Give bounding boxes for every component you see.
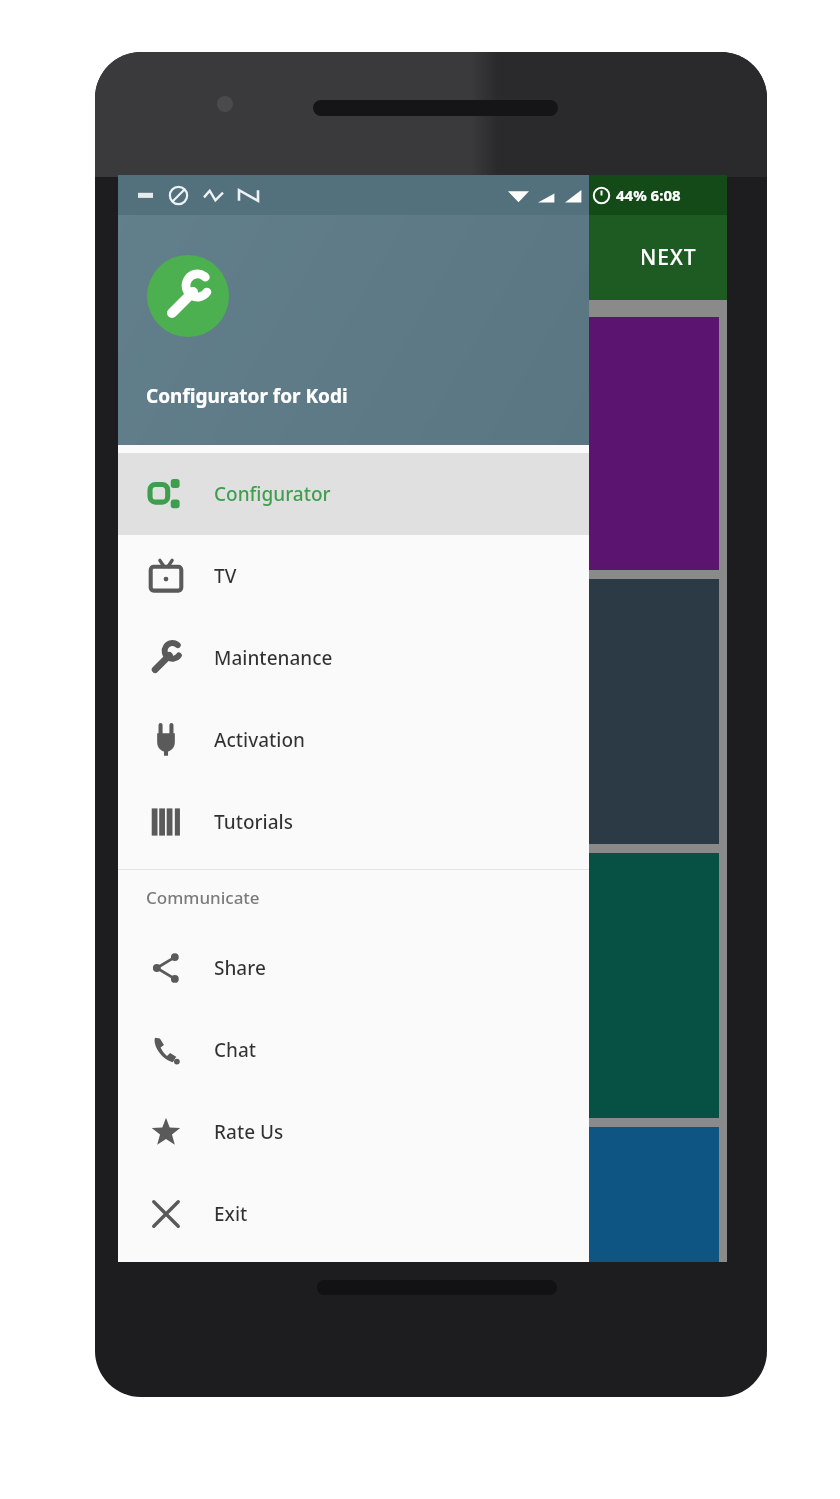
staticText: NEXT (640, 243, 697, 272)
staticText: Activation (214, 727, 305, 753)
staticText: 44% 6:08 (616, 185, 681, 205)
button[interactable]: Exit (118, 1173, 589, 1255)
staticText: TV (214, 563, 237, 589)
button[interactable]: Configurator for Kodi (118, 175, 589, 445)
button[interactable]: Build (126, 317, 719, 570)
button[interactable] (126, 1127, 719, 1262)
staticText: Install (140, 446, 209, 479)
button[interactable]: Root (126, 853, 719, 1118)
button[interactable]: TV (118, 535, 589, 617)
staticText: Clean (140, 714, 204, 747)
button[interactable]: Share (118, 927, 589, 1009)
button[interactable]: Maintenance (118, 617, 589, 699)
staticText: Exit (214, 1201, 248, 1227)
button[interactable]: Chat (118, 1009, 589, 1091)
staticText: Communicate (146, 886, 260, 909)
staticText: Configurator for Kodi (146, 383, 348, 409)
staticText: Tutorials (214, 809, 293, 835)
button[interactable]: Options/ (126, 579, 719, 844)
button[interactable]: Rate Us (118, 1091, 589, 1173)
staticText: Configurator (214, 481, 331, 507)
staticText: Root (140, 951, 193, 984)
button[interactable]: Tutorials (118, 781, 589, 863)
button[interactable]: NEXT (628, 235, 709, 280)
button[interactable]: Configurator (118, 453, 589, 535)
staticText: Maintenance (214, 645, 333, 671)
button[interactable]: Activation (118, 699, 589, 781)
staticText: Share (214, 955, 266, 981)
staticText: Chat (214, 1037, 257, 1063)
staticText: Rate Us (214, 1119, 284, 1145)
